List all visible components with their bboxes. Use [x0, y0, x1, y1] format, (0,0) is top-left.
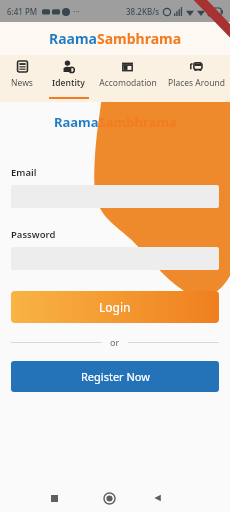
staticText: Password — [11, 228, 56, 241]
staticText: ··· — [73, 6, 80, 17]
staticText: 6:41 PM — [7, 6, 38, 17]
button[interactable]: Back — [144, 484, 172, 512]
staticText: Identity — [52, 77, 85, 89]
button[interactable]: News — [0, 55, 44, 102]
staticText: 38.2KB/s — [126, 6, 160, 17]
button[interactable]: Home — [95, 484, 123, 512]
staticText: Accomodation — [99, 77, 157, 89]
staticText: Login — [99, 299, 131, 315]
staticText: or — [110, 336, 120, 348]
button[interactable]: Recent apps — [40, 484, 68, 512]
button[interactable]: Identity — [44, 55, 93, 102]
staticText: Email — [11, 166, 37, 179]
staticText: RaamaSambhrama — [49, 29, 182, 48]
button[interactable]: Register Now — [11, 361, 219, 392]
staticText: Register Now — [81, 369, 150, 384]
staticText: RaamaSambhrama — [54, 113, 177, 131]
staticText: News — [11, 77, 33, 89]
button[interactable]: Accomodation — [93, 55, 162, 102]
button[interactable]: Places Around — [162, 55, 230, 102]
staticText: Places Around — [168, 77, 225, 89]
button[interactable]: Login — [11, 291, 219, 323]
